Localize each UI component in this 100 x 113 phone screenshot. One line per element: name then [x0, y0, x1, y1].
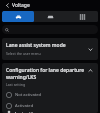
staticText: Activated	[15, 103, 34, 109]
staticText: Voltage	[12, 2, 30, 9]
staticText: Lane assist system mode	[6, 42, 66, 49]
button[interactable]: Vehicle	[2, 11, 34, 22]
button[interactable]: Search	[2, 25, 98, 34]
staticText: Select the user menu	[6, 51, 41, 56]
staticText: Not activated	[15, 92, 42, 98]
staticText: Configuration for lane departure warning…	[6, 67, 85, 80]
button[interactable]: Lane assist system mode	[2, 38, 98, 60]
staticText: Last setting	[6, 82, 26, 87]
staticText: Last setting	[15, 111, 39, 113]
button[interactable]: Back	[3, 1, 12, 10]
button[interactable]: Seats	[34, 11, 66, 22]
button[interactable]: Not activated	[2, 89, 98, 100]
button[interactable]: Activated	[2, 100, 98, 111]
button[interactable]: Last setting	[2, 111, 98, 113]
button[interactable]: Configuration for lane departure warning…	[2, 63, 98, 88]
button[interactable]: Grid	[66, 11, 98, 22]
